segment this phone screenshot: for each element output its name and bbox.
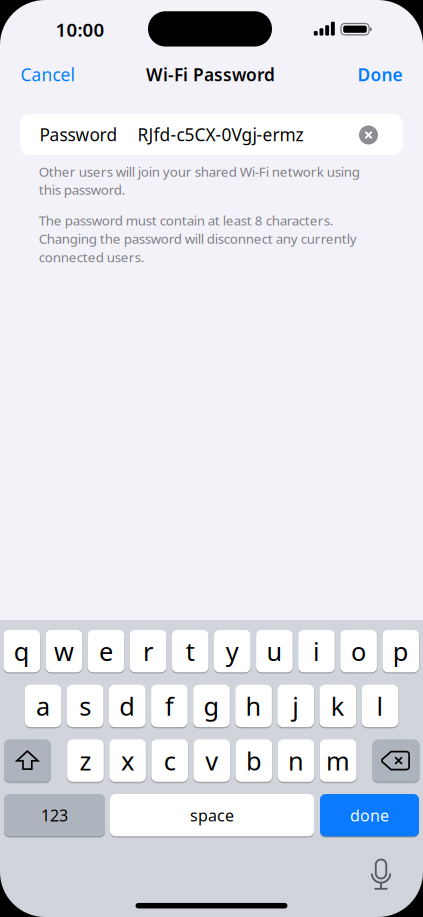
staticText: f <box>165 689 174 723</box>
button[interactable]: Shift <box>4 739 51 782</box>
staticText: Other users will join your shared Wi-Fi … <box>39 163 360 180</box>
staticText: x <box>121 744 134 777</box>
button[interactable]: r <box>130 630 166 672</box>
staticText: Wi-Fi Password <box>146 63 275 86</box>
staticText: m <box>326 744 350 777</box>
button[interactable]: b <box>236 739 272 782</box>
staticText: y <box>226 634 239 668</box>
button[interactable]: z <box>67 739 104 782</box>
button[interactable]: v <box>193 739 230 782</box>
button[interactable]: 123 <box>4 794 105 836</box>
button[interactable]: y <box>214 630 251 672</box>
staticText: b <box>246 744 262 777</box>
button[interactable]: o <box>340 630 377 672</box>
button[interactable]: f <box>151 685 188 727</box>
button[interactable]: i <box>298 630 335 672</box>
button[interactable]: q <box>3 630 40 672</box>
button[interactable]: space <box>110 794 314 836</box>
button[interactable]: d <box>109 685 146 727</box>
button[interactable]: Done <box>358 63 403 86</box>
staticText: s <box>79 689 91 723</box>
staticText: q <box>14 634 30 668</box>
staticText: a <box>36 689 50 723</box>
staticText: i <box>313 634 320 668</box>
staticText: t <box>186 634 195 668</box>
button[interactable]: h <box>235 685 272 727</box>
button[interactable]: a <box>25 685 61 727</box>
button[interactable]: j <box>277 685 314 727</box>
staticText: j <box>292 689 299 723</box>
button[interactable]: Delete <box>372 739 419 782</box>
staticText: r <box>143 634 153 668</box>
staticText: space <box>190 805 234 826</box>
staticText: done <box>350 805 389 826</box>
button[interactable]: n <box>278 739 314 782</box>
staticText: w <box>54 634 74 668</box>
staticText: 123 <box>41 805 68 826</box>
button[interactable]: Password <box>20 114 403 155</box>
button[interactable]: t <box>172 630 208 672</box>
staticText: Changing the password will disconnect an… <box>39 230 357 247</box>
button[interactable]: w <box>46 630 82 672</box>
button[interactable]: l <box>362 685 398 727</box>
staticText: l <box>376 689 383 723</box>
button[interactable]: g <box>193 685 230 727</box>
button[interactable]: Clear text <box>359 125 378 144</box>
button[interactable]: e <box>88 630 124 672</box>
button[interactable]: x <box>109 739 146 782</box>
staticText: c <box>164 744 176 777</box>
staticText: k <box>331 689 345 723</box>
staticText: n <box>288 744 304 777</box>
staticText: The password must contain at least 8 cha… <box>39 211 334 229</box>
staticText: d <box>119 689 135 723</box>
staticText: 10:00 <box>55 17 104 42</box>
staticText: Cancel <box>20 63 74 86</box>
staticText: connected users. <box>39 248 145 266</box>
staticText: h <box>246 689 262 723</box>
staticText: g <box>203 689 219 723</box>
staticText: Password <box>40 123 118 146</box>
button[interactable]: u <box>256 630 293 672</box>
staticText: p <box>393 634 409 668</box>
staticText: e <box>99 634 113 668</box>
staticText: RJfd-c5CX-0Vgj-ermz <box>138 123 304 146</box>
staticText: z <box>79 744 91 777</box>
button[interactable]: done <box>320 794 419 836</box>
staticText: Done <box>358 63 403 86</box>
button[interactable]: c <box>151 739 188 782</box>
staticText: v <box>205 744 218 777</box>
button[interactable]: k <box>319 685 356 727</box>
staticText: o <box>351 634 366 668</box>
button[interactable]: p <box>382 630 419 672</box>
button[interactable]: m <box>320 739 356 782</box>
button[interactable]: Dictate <box>367 861 395 891</box>
button[interactable]: Cancel <box>20 63 74 86</box>
staticText: this password. <box>39 181 126 198</box>
staticText: u <box>266 634 282 668</box>
button[interactable]: s <box>67 685 103 727</box>
